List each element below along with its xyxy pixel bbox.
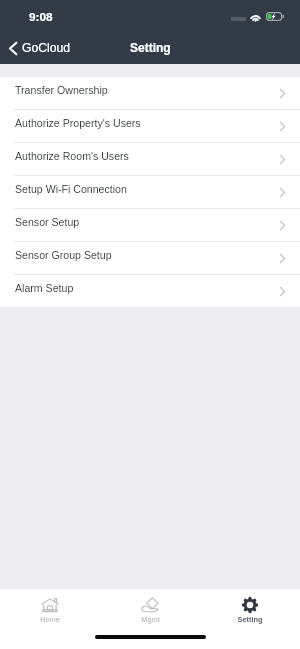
- other: Home: [41, 596, 59, 614]
- other: Management: [141, 596, 159, 614]
- button[interactable]: Home: [0, 593, 100, 623]
- staticText: Home: [40, 615, 60, 623]
- other: Setting: [241, 596, 259, 614]
- staticText: GoCloud: [22, 41, 71, 55]
- button[interactable]: Setting: [200, 593, 300, 623]
- button[interactable]: Sensor Setup: [0, 209, 300, 241]
- staticText: Authorize Room's Users: [15, 150, 129, 162]
- staticText: Mgmt: [141, 615, 160, 623]
- staticText: Setting: [237, 615, 263, 623]
- button[interactable]: Transfer Ownership: [0, 77, 300, 109]
- staticText: 9:08: [29, 10, 53, 23]
- staticText: Sensor Setup: [15, 216, 80, 228]
- button[interactable]: Back: [0, 36, 81, 60]
- staticText: Alarm Setup: [15, 282, 74, 294]
- button[interactable]: Authorize Property's Users: [0, 110, 300, 142]
- staticText: Setup Wi-Fi Connection: [15, 183, 127, 195]
- staticText: Transfer Ownership: [15, 84, 108, 96]
- other: Back: [9, 42, 17, 55]
- button[interactable]: Alarm Setup: [0, 275, 300, 307]
- staticText: Setting: [130, 41, 171, 54]
- button[interactable]: Sensor Group Setup: [0, 242, 300, 274]
- button[interactable]: Setup Wi-Fi Connection: [0, 176, 300, 208]
- button[interactable]: Management: [100, 593, 200, 623]
- staticText: Sensor Group Setup: [15, 249, 112, 261]
- staticText: Authorize Property's Users: [15, 117, 141, 129]
- button[interactable]: Authorize Room's Users: [0, 143, 300, 175]
